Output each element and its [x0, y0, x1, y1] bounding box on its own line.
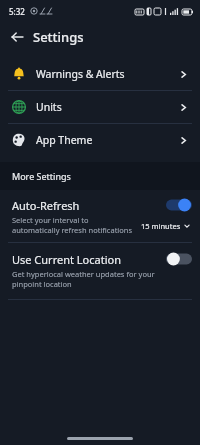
- staticText: 15 minutes: [141, 221, 181, 231]
- button[interactable]: Toggle on: [166, 198, 192, 212]
- staticText: Auto-Refresh: [12, 198, 80, 213]
- button[interactable]: Auto-Refresh: [0, 190, 200, 242]
- staticText: App Theme: [36, 133, 179, 147]
- staticText: 5:32: [9, 6, 25, 17]
- button[interactable]: Back: [7, 27, 27, 47]
- staticText: Warnings & Alerts: [36, 67, 179, 81]
- button[interactable]: Warnings & Alerts: [0, 58, 200, 90]
- staticText: Settings: [33, 28, 84, 46]
- staticText: More Settings: [12, 170, 71, 182]
- staticText: Use Current Location: [12, 252, 121, 267]
- button[interactable]: 15 minutes: [139, 220, 192, 232]
- button[interactable]: App Theme: [0, 124, 200, 156]
- staticText: Select your interval to automatically re…: [12, 215, 133, 235]
- button[interactable]: Use Current Location: [0, 243, 200, 299]
- staticText: Units: [36, 100, 179, 114]
- button[interactable]: Units: [0, 91, 200, 123]
- button[interactable]: Toggle off: [166, 252, 192, 266]
- staticText: Get hyperlocal weather updates for your …: [12, 269, 160, 289]
